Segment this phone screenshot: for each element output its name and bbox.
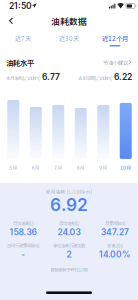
staticText: 2 [66, 249, 71, 259]
button[interactable]: 近12个月 [92, 34, 138, 46]
staticText: 怠速占比 [107, 242, 123, 249]
button[interactable]: 节油小建议 [103, 58, 132, 66]
staticText: 9月 [99, 164, 107, 171]
staticText: 近7天 [15, 34, 31, 43]
staticText: 月里程(km) [105, 220, 125, 226]
staticText: 近12个月 [102, 34, 128, 43]
staticText: 7月 [54, 164, 62, 171]
staticText: 油耗水平 [6, 57, 34, 68]
staticText: 月加油量(L) [13, 220, 33, 226]
staticText: 油耗数据 [51, 15, 87, 27]
staticText: 10月 [120, 164, 131, 171]
staticText: 单位油耗行驶次数 [53, 242, 85, 249]
staticText: 6月 [32, 164, 40, 171]
staticText: - [21, 249, 25, 259]
staticText: 158.36 [9, 227, 36, 237]
staticText: 6.77 [40, 72, 60, 82]
staticText: 近30天 [59, 34, 79, 43]
staticText: 数据更新于昨日17:00 [50, 266, 87, 273]
staticText: 去年同期(L/100km) [78, 75, 112, 81]
staticText: 本月油耗(L/100km) [6, 75, 40, 81]
staticText: 347.27 [101, 227, 129, 237]
staticText: 单月油耗 (L/100km) [45, 188, 92, 195]
staticText: 5月 [9, 164, 17, 171]
staticText: 14.00% [99, 249, 131, 259]
staticText: 6.22 [112, 72, 132, 82]
button[interactable]: 近7天 [0, 34, 46, 46]
staticText: 24.03 [57, 227, 80, 237]
button[interactable]: 近30天 [46, 34, 92, 46]
staticText: 8月 [77, 164, 85, 171]
staticText: 6.92 [50, 194, 88, 215]
staticText: 21:50 [9, 1, 32, 11]
staticText: 月均油耗(L) [59, 220, 79, 226]
staticText: 节油小建议 [103, 58, 128, 66]
staticText: 日均行驶里程(km) [7, 242, 39, 249]
button[interactable]: Back [3, 13, 19, 29]
